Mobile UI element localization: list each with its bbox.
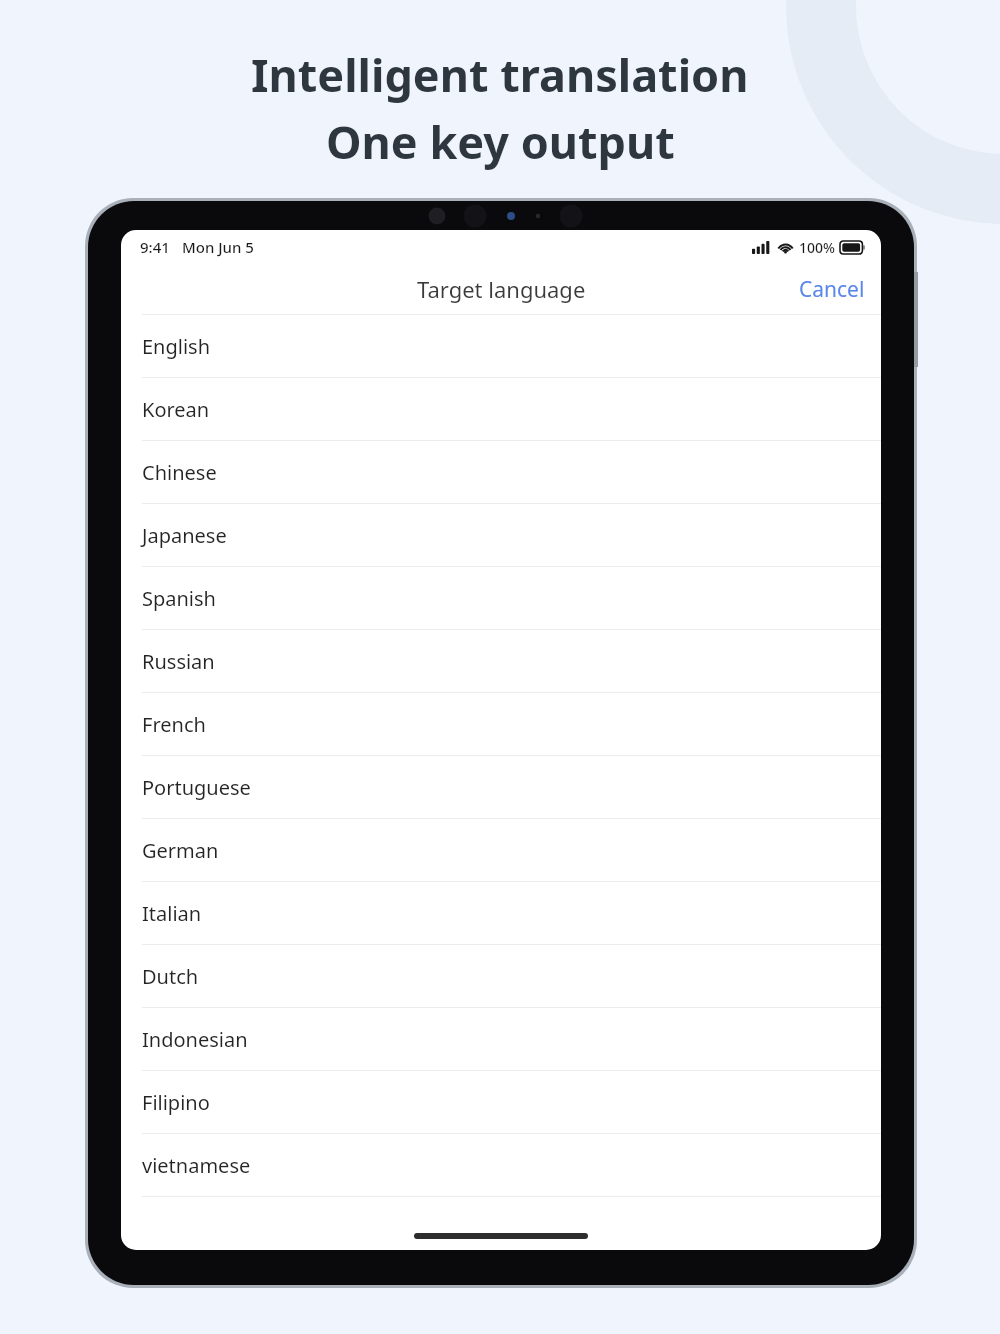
- staticText: Mon Jun 5: [182, 237, 254, 257]
- button[interactable]: Chinese: [121, 441, 881, 504]
- staticText: Dutch: [142, 963, 199, 990]
- staticText: Chinese: [142, 459, 217, 486]
- button[interactable]: Cancel: [783, 266, 881, 313]
- button[interactable]: vietnamese: [121, 1134, 881, 1197]
- button[interactable]: Japanese: [121, 504, 881, 567]
- staticText: Portuguese: [142, 774, 251, 801]
- button[interactable]: Russian: [121, 630, 881, 693]
- staticText: 100%: [799, 238, 835, 257]
- staticText: One key output: [326, 111, 675, 172]
- button[interactable]: German: [121, 819, 881, 882]
- button[interactable]: Portuguese: [121, 756, 881, 819]
- button[interactable]: Indonesian: [121, 1008, 881, 1071]
- staticText: Italian: [142, 900, 202, 927]
- staticText: Intelligent translation: [251, 44, 749, 105]
- staticText: Korean: [142, 396, 210, 423]
- button[interactable]: Italian: [121, 882, 881, 945]
- button[interactable]: Spanish: [121, 567, 881, 630]
- button[interactable]: Dutch: [121, 945, 881, 1008]
- other: Home indicator: [414, 1233, 588, 1239]
- staticText: Indonesian: [142, 1026, 248, 1053]
- staticText: French: [142, 711, 206, 738]
- staticText: Spanish: [142, 585, 216, 612]
- staticText: Cancel: [799, 275, 865, 304]
- button[interactable]: Korean: [121, 378, 881, 441]
- staticText: German: [142, 837, 219, 864]
- staticText: 9:41: [140, 237, 170, 257]
- staticText: Russian: [142, 648, 215, 675]
- button[interactable]: English: [121, 315, 881, 378]
- staticText: Japanese: [142, 522, 227, 549]
- button[interactable]: French: [121, 693, 881, 756]
- staticText: English: [142, 333, 211, 360]
- staticText: vietnamese: [142, 1152, 251, 1179]
- staticText: Target language: [417, 274, 586, 304]
- staticText: Filipino: [142, 1089, 210, 1116]
- button[interactable]: Filipino: [121, 1071, 881, 1134]
